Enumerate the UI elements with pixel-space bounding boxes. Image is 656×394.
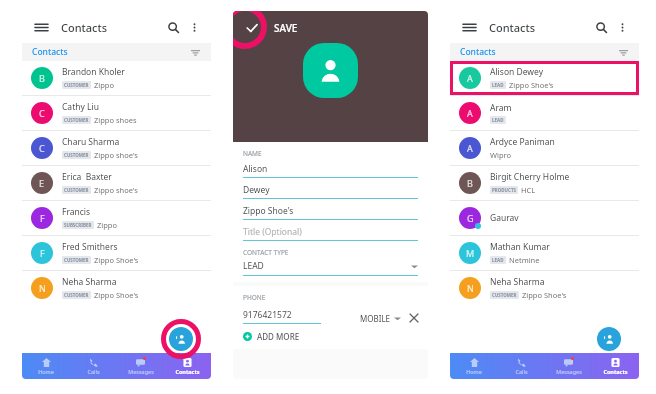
button[interactable]: Add contact [597, 327, 621, 351]
staticText: M [466, 247, 475, 259]
button[interactable]: Filter [615, 44, 631, 60]
button[interactable]: Alison [243, 163, 418, 178]
staticText: PRODUCTS [492, 187, 516, 193]
staticText: Zippo [97, 220, 117, 230]
button[interactable]: Calls [70, 353, 117, 379]
staticText: Contacts [460, 46, 496, 58]
staticText: 9176421572 [243, 309, 292, 321]
button[interactable]: N [22, 271, 211, 305]
staticText: Zippo shoes [94, 115, 137, 125]
staticText: C [39, 142, 45, 154]
button[interactable]: Menu [450, 11, 639, 43]
button[interactable]: Menu [32, 18, 50, 36]
staticText: Fred Smithers [62, 241, 118, 253]
staticText: Messages [128, 368, 154, 375]
staticText: CUSTOMER [64, 292, 89, 298]
button[interactable]: Calls [498, 353, 545, 379]
staticText: NAME [243, 149, 262, 158]
staticText: LEAD [243, 260, 264, 272]
staticText: CUSTOMER [64, 187, 89, 193]
staticText: E [39, 177, 45, 189]
button[interactable]: G [450, 201, 639, 235]
staticText: Birgit Cherry Holme [490, 171, 570, 183]
staticText: Neha Sharma [62, 276, 117, 288]
button[interactable]: F [22, 201, 211, 235]
button[interactable]: Messages [545, 353, 592, 379]
staticText: CUSTOMER [64, 152, 89, 158]
staticText: Alison [243, 163, 268, 175]
staticText: N [467, 282, 474, 294]
staticText: F [40, 212, 45, 224]
button[interactable]: Menu [460, 18, 478, 36]
staticText: SUBSCRIBER [64, 222, 92, 228]
button[interactable]: C [22, 131, 211, 165]
button[interactable]: LEAD [243, 260, 418, 272]
button[interactable]: Menu [22, 11, 211, 43]
button[interactable]: Contacts [450, 43, 639, 61]
button[interactable]: Messages [117, 353, 164, 379]
button[interactable]: Search [592, 18, 610, 36]
staticText: A [467, 142, 473, 154]
staticText: Dewey [243, 184, 270, 196]
staticText: Zippo Shoe's [94, 255, 139, 265]
staticText: Title (Optional) [243, 226, 302, 238]
staticText: Contacts [603, 368, 628, 375]
staticText: Francis [62, 206, 91, 218]
staticText: ADD MORE [257, 331, 300, 342]
button[interactable]: Save [243, 19, 261, 37]
staticText: Zippo [94, 80, 114, 90]
button[interactable]: Contacts [22, 43, 211, 61]
staticText: Contacts [489, 20, 536, 35]
button[interactable]: A [450, 61, 639, 95]
staticText: Wipro [490, 150, 512, 160]
button[interactable]: Contact photo [303, 43, 358, 98]
staticText: Neha Sharma [490, 276, 545, 288]
button[interactable]: More options [613, 18, 631, 36]
staticText: Aram [490, 102, 512, 114]
button[interactable]: N [450, 271, 639, 305]
button[interactable]: Home [22, 353, 70, 379]
staticText: LEAD [492, 82, 504, 88]
staticText: Gaurav [490, 212, 519, 224]
staticText: CUSTOMER [64, 257, 89, 263]
staticText: C [39, 107, 45, 119]
staticText: Calls [515, 368, 528, 375]
button[interactable]: Save [233, 11, 428, 45]
staticText: F [40, 247, 45, 259]
button[interactable]: B [450, 166, 639, 200]
staticText: N [39, 282, 46, 294]
staticText: LEAD [492, 257, 504, 263]
button[interactable]: Contacts [592, 353, 639, 379]
button[interactable]: F [22, 236, 211, 270]
staticText: A [467, 72, 473, 84]
button[interactable]: Title (Optional) [243, 226, 418, 241]
button[interactable]: Search [164, 18, 182, 36]
staticText: CUSTOMER [64, 82, 89, 88]
button[interactable]: Home [450, 353, 498, 379]
staticText: SAVE [274, 21, 298, 35]
button[interactable]: Dewey [243, 184, 418, 199]
staticText: Contacts [175, 368, 200, 375]
button[interactable]: Remove phone [408, 312, 420, 324]
staticText: B [39, 72, 45, 84]
staticText: Mathan Kumar [490, 241, 550, 253]
staticText: Zippo Shoe's [94, 290, 139, 300]
button[interactable]: Zippo Shoe's [243, 205, 418, 220]
staticText: CUSTOMER [64, 117, 89, 123]
button[interactable]: Filter [187, 44, 203, 60]
staticText: Cathy Liu [62, 101, 99, 113]
button[interactable]: More options [185, 18, 203, 36]
button[interactable]: B [22, 61, 211, 95]
button[interactable]: A [450, 131, 639, 165]
button[interactable]: C [22, 96, 211, 130]
staticText: Alison Dewey [490, 66, 543, 78]
staticText: MOBILE [360, 313, 391, 324]
button[interactable]: ADD MORE [243, 331, 300, 342]
button[interactable]: Contacts [164, 353, 211, 379]
staticText: Zippo shoe's [94, 185, 138, 195]
button[interactable]: E [22, 166, 211, 200]
button[interactable]: Add contact [169, 327, 193, 351]
button[interactable]: M [450, 236, 639, 270]
button[interactable]: MOBILE [360, 313, 401, 324]
button[interactable]: A [450, 96, 639, 130]
